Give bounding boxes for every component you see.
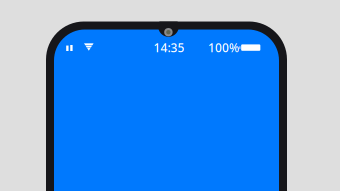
staticText: 100% [208, 39, 239, 55]
staticText: 14:35 [153, 39, 184, 55]
